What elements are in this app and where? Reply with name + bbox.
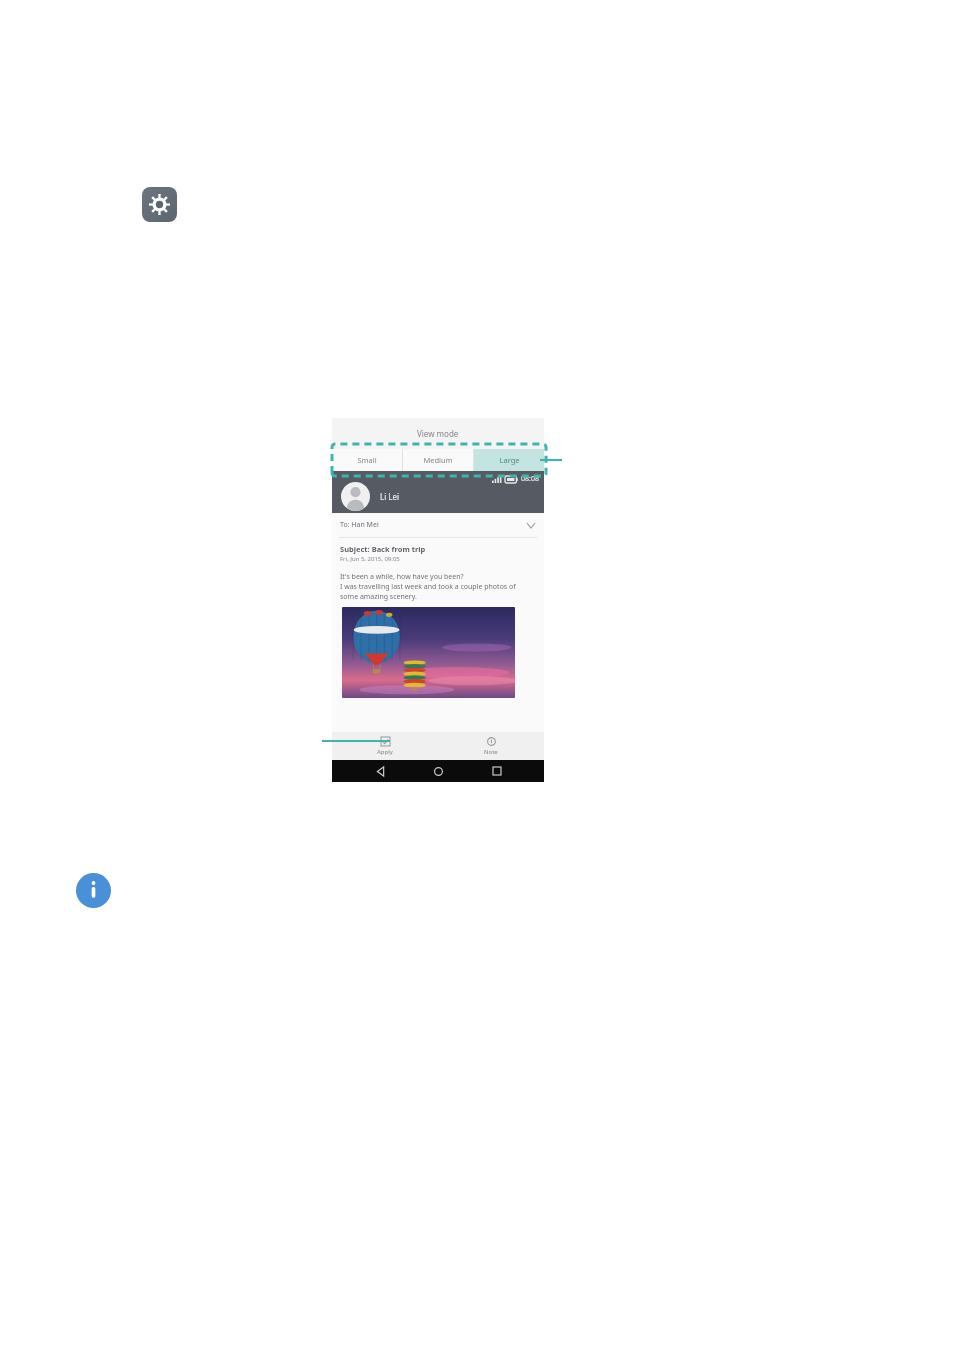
staticText: Note: [484, 748, 498, 756]
staticText: 08:08: [521, 474, 539, 484]
staticText: Subject: Back from trip: [340, 544, 426, 554]
staticText: Medium: [423, 455, 453, 465]
button[interactable]: Apply: [332, 732, 438, 760]
staticText: Large: [499, 455, 520, 465]
button[interactable]: Settings: [142, 187, 177, 222]
staticText: Small: [357, 455, 377, 465]
button[interactable]: Large: [474, 449, 544, 471]
button[interactable]: Back: [369, 760, 391, 782]
button[interactable]: Note: [438, 732, 544, 760]
button[interactable]: Small: [332, 449, 402, 471]
staticText: Li Lei: [380, 491, 400, 502]
button[interactable]: Medium: [403, 449, 473, 471]
staticText: I was travelling last week and took a co…: [340, 582, 516, 592]
staticText: Apply: [377, 748, 393, 756]
button[interactable]: Recents: [486, 760, 508, 782]
staticText: View mode: [417, 428, 459, 439]
button[interactable]: Information: [76, 873, 111, 908]
button[interactable]: Home: [427, 760, 449, 782]
staticText: some amazing scenery.: [340, 592, 417, 602]
staticText: It's been a while, how have you been?: [340, 572, 464, 582]
staticText: To: Han Mei: [340, 520, 379, 530]
staticText: Fri, Jun 5, 2015, 09:05: [340, 555, 400, 563]
